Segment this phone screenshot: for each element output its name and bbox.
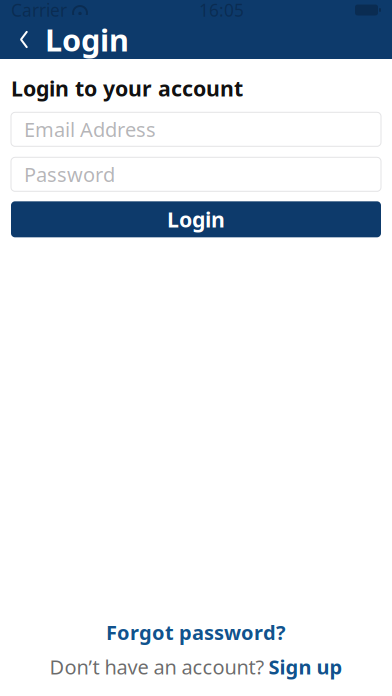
staticText: Don’t have an account? (49, 653, 264, 680)
staticText: Login to your account (11, 74, 243, 102)
staticText: Email Address (24, 116, 156, 143)
staticText: Forgot password? (106, 619, 286, 645)
staticText: Sign up (268, 653, 342, 680)
staticText: Login (45, 19, 129, 60)
staticText: Carrier (11, 0, 67, 21)
button[interactable]: Don’t have an account? (49, 651, 342, 682)
button[interactable]: Login (11, 201, 381, 237)
staticText: Login (167, 205, 225, 233)
button[interactable]: Forgot password? (98, 616, 294, 648)
staticText: 16:05 (199, 0, 244, 21)
button[interactable]: Back (7, 20, 41, 59)
staticText: Password (24, 161, 115, 188)
